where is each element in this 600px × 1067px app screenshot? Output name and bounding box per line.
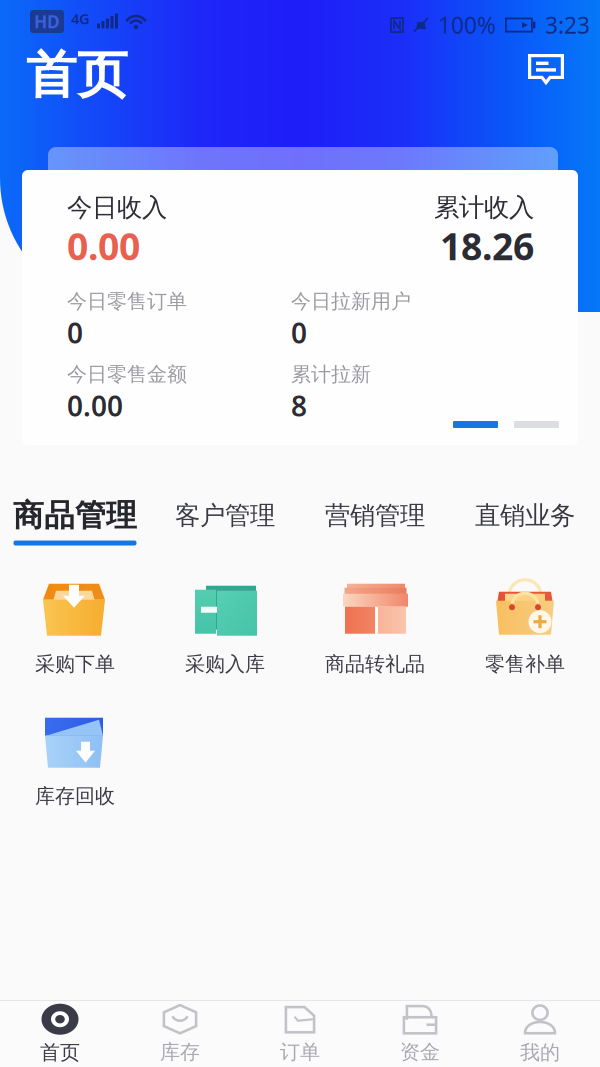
staticText: 0 — [291, 314, 307, 351]
button[interactable]: 商品转礼品 — [300, 573, 450, 685]
staticText: 累计拉新 — [291, 362, 371, 387]
staticText: 今日拉新用户 — [291, 289, 411, 314]
staticText: 采购入库 — [185, 652, 265, 676]
staticText: 18.26 — [440, 221, 534, 271]
button[interactable]: 营销管理 — [300, 494, 450, 550]
staticText: 库存回收 — [35, 784, 115, 808]
button[interactable]: 采购下单 — [0, 573, 150, 685]
button[interactable]: 首页 — [0, 1001, 120, 1067]
staticText: 资金 — [400, 1040, 440, 1064]
button[interactable]: 商品管理 — [0, 494, 150, 550]
staticText: 客户管理 — [175, 500, 275, 531]
staticText: 0.00 — [67, 221, 140, 271]
staticText: 4G — [71, 9, 90, 28]
staticText: 今日零售订单 — [67, 289, 187, 314]
button[interactable]: 我的 — [480, 1001, 600, 1067]
button[interactable]: 资金 — [360, 1001, 480, 1067]
staticText: 我的 — [520, 1040, 560, 1065]
staticText: 营销管理 — [325, 500, 425, 531]
staticText: 零售补单 — [485, 652, 565, 676]
staticText: 今日收入 — [67, 192, 167, 223]
staticText: 首页 — [26, 44, 128, 106]
staticText: 库存 — [160, 1040, 200, 1064]
button[interactable]: 库存回收 — [0, 705, 150, 817]
staticText: 采购下单 — [35, 652, 115, 676]
staticText: 商品管理 — [13, 497, 137, 534]
staticText: 直销业务 — [475, 500, 575, 531]
staticText: HD — [34, 10, 60, 33]
staticText: 首页 — [40, 1040, 80, 1065]
staticText: 100% — [438, 10, 496, 40]
staticText: 3:23 — [545, 10, 590, 40]
staticText: 8 — [291, 387, 307, 424]
staticText: 累计收入 — [434, 192, 534, 223]
staticText: 今日零售金额 — [67, 362, 187, 387]
button[interactable]: 采购入库 — [150, 573, 300, 685]
button[interactable]: 客户管理 — [150, 494, 300, 550]
staticText: 0 — [67, 314, 83, 351]
staticText: 订单 — [280, 1040, 320, 1064]
button[interactable]: 库存 — [120, 1001, 240, 1067]
staticText: 商品转礼品 — [325, 652, 425, 676]
button[interactable]: Messages — [528, 54, 564, 84]
button[interactable]: 订单 — [240, 1001, 360, 1067]
staticText: 0.00 — [67, 387, 123, 424]
button[interactable]: 直销业务 — [450, 494, 600, 550]
button[interactable]: 零售补单 — [450, 573, 600, 685]
